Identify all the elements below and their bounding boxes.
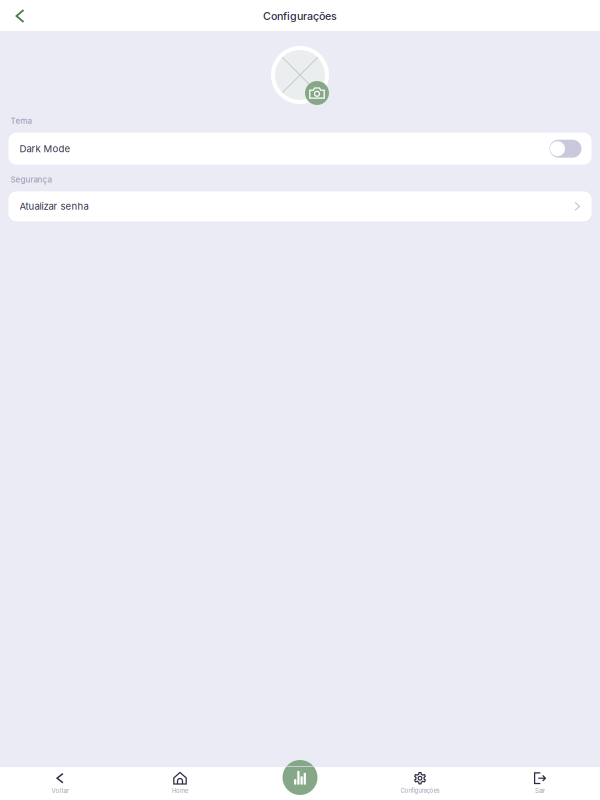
button[interactable]: Home [120,766,240,800]
staticText: Atualizar senha [19,201,88,212]
button[interactable]: Estatísticas [240,766,360,800]
staticText: Sair [535,787,545,794]
staticText: Configurações [263,9,337,22]
button[interactable]: Voltar [0,766,120,800]
staticText: Segurança [10,175,51,184]
staticText: Tema [10,116,31,126]
staticText: Dark Mode [19,143,70,154]
button[interactable]: Alterar foto [305,81,329,105]
button[interactable]: Dark Mode [8,133,591,165]
button[interactable]: Sair [480,766,600,800]
button[interactable]: Configurações [360,766,480,800]
staticText: Voltar [51,787,68,794]
staticText: Configurações [400,787,439,794]
button[interactable]: Back [0,0,40,32]
staticText: Home [172,787,188,794]
button[interactable]: Atualizar senha [8,191,591,221]
